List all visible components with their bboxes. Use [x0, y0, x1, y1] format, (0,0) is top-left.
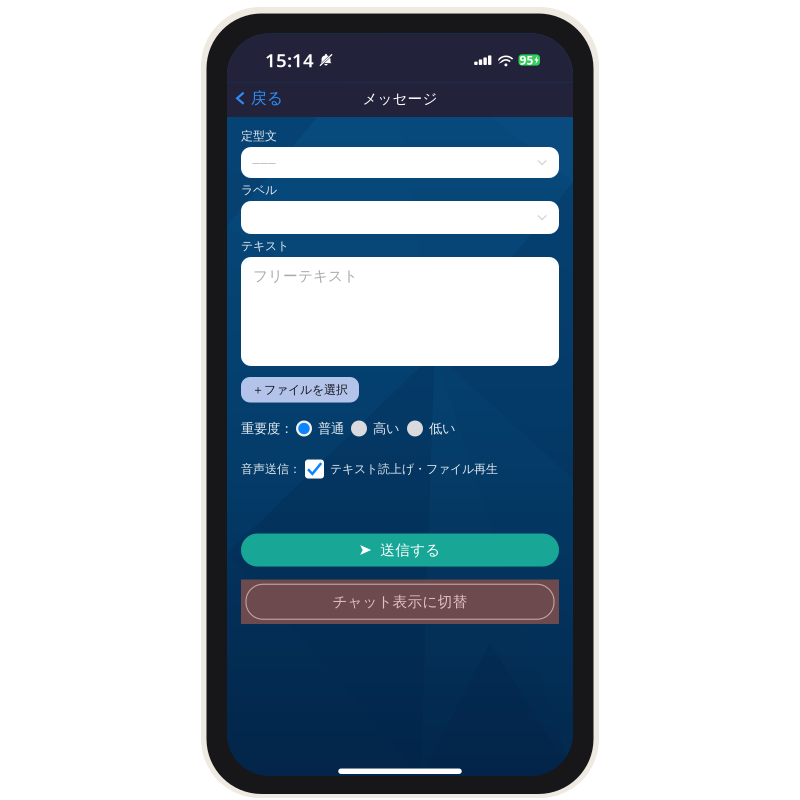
button[interactable]: 普通 [296, 415, 344, 441]
staticText: チャット表示に切替 [332, 593, 467, 611]
button[interactable]: ＋ファイルを選択 [241, 377, 359, 402]
staticText: 高い [373, 420, 400, 437]
staticText: 15:14 [265, 48, 314, 72]
staticText: ラベル [241, 183, 277, 197]
button[interactable]: チャット表示に切替 [241, 579, 559, 624]
staticText: 95 [520, 52, 534, 68]
staticText: ――― [252, 157, 276, 168]
button[interactable]: 低い [407, 415, 456, 441]
staticText: テキスト [241, 239, 289, 253]
button[interactable]: 送信する [241, 533, 559, 566]
button[interactable]: 高い [351, 415, 400, 441]
staticText: ＋ファイルを選択 [252, 382, 348, 397]
button[interactable] [241, 201, 559, 234]
staticText: フリーテキスト [253, 267, 358, 285]
button[interactable]: テキスト読上げ・ファイル再生 [305, 459, 498, 478]
staticText: テキスト読上げ・ファイル再生 [330, 462, 498, 476]
staticText: 低い [429, 420, 456, 437]
staticText: 音声送信： [241, 462, 301, 476]
button[interactable]: 戻る [227, 82, 291, 117]
staticText: 普通 [318, 420, 344, 437]
staticText: メッセージ [362, 90, 437, 108]
staticText: 定型文 [241, 129, 277, 143]
staticText: 重要度： [241, 420, 293, 437]
button[interactable]: ――― [241, 147, 559, 178]
button[interactable]: フリーテキスト [241, 257, 559, 366]
staticText: 戻る [251, 88, 283, 108]
staticText: 送信する [380, 541, 440, 559]
